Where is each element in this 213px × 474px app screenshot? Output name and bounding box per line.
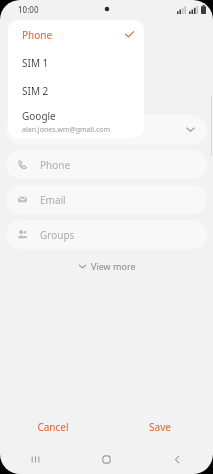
staticText: Cancel <box>37 420 69 434</box>
staticText: Google <box>22 109 56 123</box>
button[interactable]: Phone <box>8 20 144 49</box>
staticText: Save <box>149 420 171 434</box>
staticText: Phone <box>40 158 71 172</box>
staticText: Email <box>40 193 66 207</box>
staticText: SIM 1 <box>22 56 49 70</box>
button[interactable]: Save <box>106 410 213 444</box>
button[interactable]: View more <box>70 256 144 276</box>
button[interactable]: Google <box>8 105 144 138</box>
staticText: SIM 2 <box>22 84 49 98</box>
button[interactable]: Home <box>71 444 142 474</box>
staticText: Phone <box>22 28 53 42</box>
button[interactable]: Email <box>6 185 207 214</box>
button[interactable]: Phone <box>6 150 207 179</box>
button[interactable]: Recent apps <box>0 444 71 474</box>
button[interactable]: Back <box>142 444 213 474</box>
button[interactable]: SIM 2 <box>8 77 144 105</box>
button[interactable]: Cancel <box>0 410 106 444</box>
button[interactable]: Select account <box>6 115 207 144</box>
button[interactable]: SIM 1 <box>8 49 144 77</box>
staticText: View more <box>91 260 136 272</box>
staticText: Groups <box>40 228 75 242</box>
staticText: 10:00 <box>18 4 39 15</box>
button[interactable]: Groups <box>6 220 207 249</box>
staticText: alan.jones.wm@gmail.com <box>22 125 111 135</box>
